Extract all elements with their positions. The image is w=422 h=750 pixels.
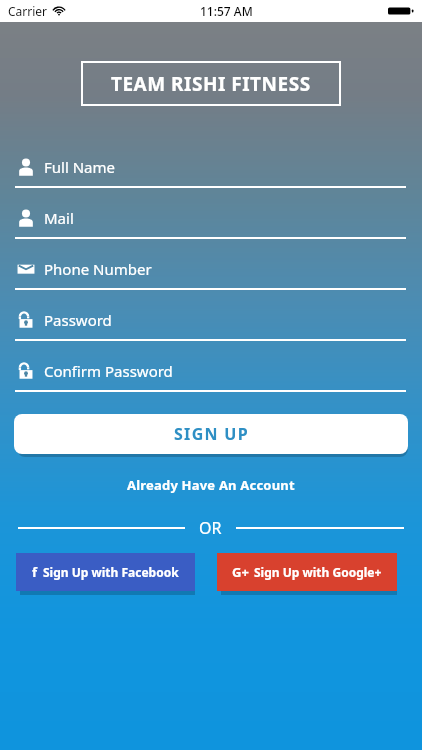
button[interactable]: Full Name	[0, 153, 422, 188]
staticText: TEAM RISHI FITNESS	[111, 71, 311, 97]
staticText: Full Name	[44, 157, 115, 177]
staticText: Carrier	[8, 3, 48, 19]
button[interactable]: G+	[217, 553, 397, 591]
staticText: Confirm Password	[44, 361, 173, 381]
staticText: Already Have An Account	[127, 476, 295, 494]
button[interactable]: Confirm Password	[0, 357, 422, 392]
staticText: Mail	[44, 208, 74, 228]
button[interactable]: TEAM RISHI FITNESS	[81, 61, 341, 106]
staticText: f	[32, 563, 38, 581]
staticText: Sign Up with Facebook	[43, 564, 179, 580]
staticText: OR	[199, 517, 222, 539]
staticText: SIGN UP	[174, 423, 249, 445]
staticText: Sign Up with Google+	[254, 564, 382, 580]
staticText: Phone Number	[44, 259, 152, 279]
other: Wi-Fi	[53, 5, 65, 17]
button[interactable]: SIGN UP	[14, 414, 408, 454]
button[interactable]: Password	[0, 306, 422, 341]
staticText: 11:57 AM	[200, 3, 253, 19]
button[interactable]: Already Have An Account	[0, 476, 422, 494]
staticText: G+	[232, 563, 249, 581]
button[interactable]: Mail	[0, 204, 422, 239]
staticText: Password	[44, 310, 112, 330]
button[interactable]: Phone Number	[0, 255, 422, 290]
button[interactable]: f	[16, 553, 195, 591]
